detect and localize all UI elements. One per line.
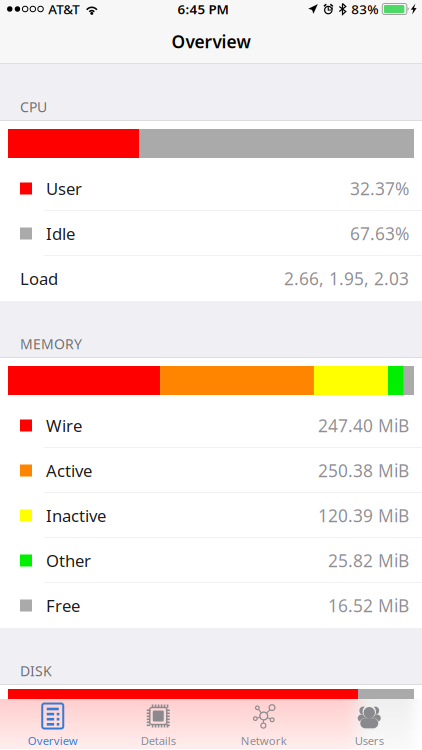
staticText: Active [46,459,92,481]
staticText: Other [46,549,91,571]
staticText: Network [241,733,287,748]
staticText: CPU [20,97,47,116]
staticText: Idle [46,222,75,244]
staticText: Inactive [46,504,106,526]
staticText: MEMORY [20,334,82,353]
staticText: Free [46,594,80,616]
staticText: Users [355,733,384,748]
staticText: 83% [351,0,378,18]
staticText: User [46,177,82,199]
button[interactable]: Details [105,699,211,749]
staticText: 247.40 MiB [318,414,409,437]
staticText: Load [20,267,58,289]
staticText: 16.52 MiB [328,594,409,617]
staticText: Overview [28,733,78,748]
staticText: 67.63% [350,222,409,245]
staticText: AT&T [48,0,79,18]
staticText: 2.66, 1.95, 2.03 [284,267,409,290]
button[interactable]: Network [211,699,316,749]
staticText: Overview [171,30,250,53]
staticText: 25.82 MiB [328,549,409,572]
staticText: 250.38 MiB [318,459,409,482]
staticText: Wire [46,414,82,436]
staticText: DISK [20,661,52,680]
staticText: 32.37% [350,177,409,200]
staticText: 120.39 MiB [318,504,409,527]
button[interactable]: Users [316,699,422,749]
staticText: Details [141,733,176,748]
staticText: 6:45 PM [177,0,228,18]
button[interactable]: Overview [0,699,105,749]
